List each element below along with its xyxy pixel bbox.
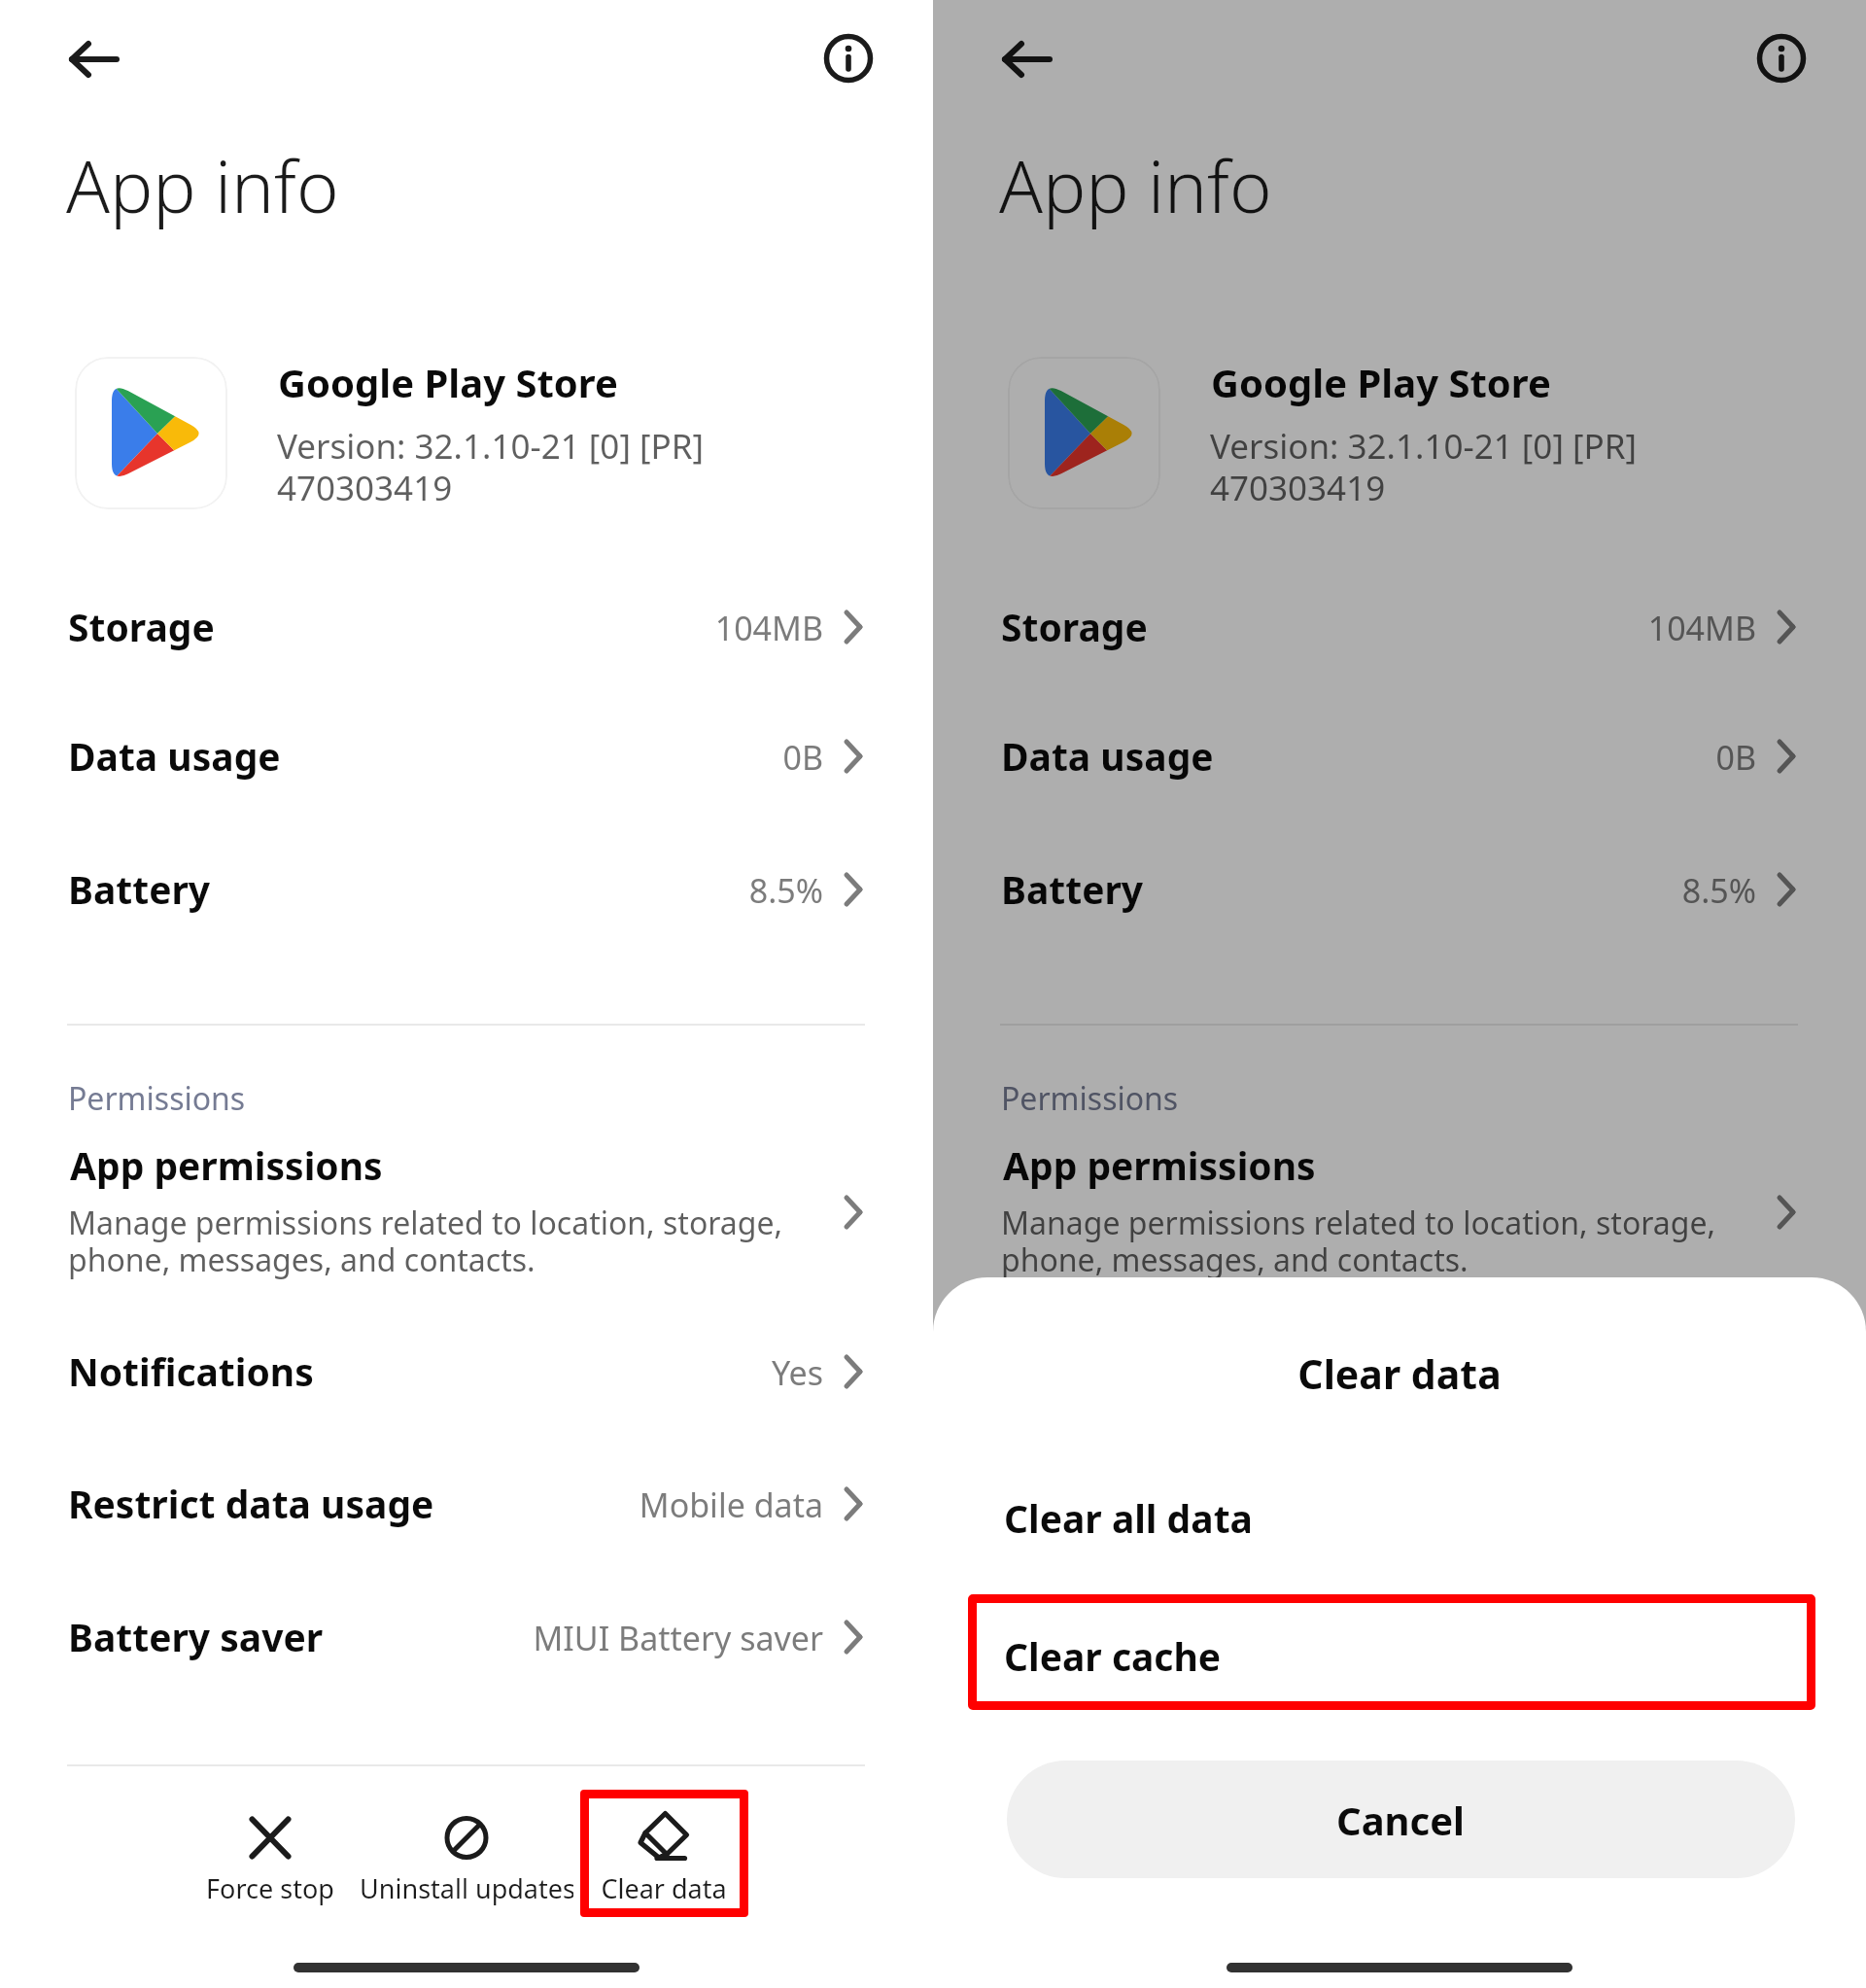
staticText: Restrict data usage — [68, 1478, 434, 1529]
button[interactable]: Force stop — [163, 1803, 377, 1910]
staticText: 470303419 — [277, 465, 453, 511]
staticText: Permissions — [1001, 1077, 1179, 1120]
staticText: Google Play Store — [278, 356, 618, 408]
button[interactable]: About app — [1750, 27, 1813, 89]
staticText: Clear cache — [1004, 1630, 1222, 1682]
button[interactable]: Data usage — [933, 705, 1866, 837]
button[interactable]: Notifications — [0, 1320, 933, 1452]
button[interactable]: Force stop — [1096, 1803, 1310, 1910]
staticText: Google Play Store — [1211, 356, 1551, 408]
staticText: Clear data — [557, 1870, 771, 1906]
staticText: Clear data — [1490, 1870, 1704, 1906]
button[interactable]: Uninstall updates — [360, 1803, 573, 1910]
staticText: Manage permissions related to location, … — [68, 1202, 783, 1244]
staticText: Yes — [1270, 1350, 1756, 1395]
button[interactable]: App permissions — [933, 1128, 1866, 1293]
staticText: Yes — [337, 1350, 823, 1395]
staticText: Restrict data usage — [1001, 1478, 1367, 1529]
staticText: phone, messages, and contacts. — [68, 1238, 536, 1281]
staticText: Permissions — [68, 1077, 246, 1120]
staticText: Data usage — [68, 730, 281, 782]
staticText: 104MB — [1270, 606, 1756, 650]
staticText: 0B — [1270, 735, 1756, 780]
staticText: Data usage — [1001, 730, 1214, 782]
staticText: Force stop — [163, 1870, 377, 1906]
staticText: Uninstall updates — [1293, 1870, 1506, 1906]
staticText: Notifications — [68, 1345, 314, 1397]
button[interactable]: App permissions — [0, 1128, 933, 1293]
staticText: 104MB — [337, 606, 823, 650]
button[interactable]: Storage — [0, 575, 933, 708]
staticText: MIUI Battery saver — [337, 1616, 823, 1660]
staticText: App permissions — [70, 1139, 383, 1191]
staticText: Mobile data — [337, 1482, 823, 1527]
staticText: Version: 32.1.10-21 [0] [PR] — [277, 423, 704, 470]
staticText: 8.5% — [337, 868, 823, 913]
staticText: Storage — [1001, 601, 1148, 652]
staticText: Clear data — [1108, 1346, 1691, 1401]
button[interactable]: Battery — [0, 838, 933, 970]
button[interactable]: Cancel — [1007, 1761, 1795, 1878]
staticText: App permissions — [1003, 1139, 1316, 1191]
staticText: Battery saver — [68, 1611, 324, 1662]
staticText: phone, messages, and contacts. — [1001, 1238, 1469, 1281]
staticText: Clear all data — [1004, 1492, 1253, 1544]
button[interactable]: Back — [987, 25, 1065, 93]
button[interactable]: Clear data — [557, 1803, 771, 1910]
button[interactable]: Notifications — [933, 1320, 1866, 1452]
staticText: Battery — [1001, 863, 1144, 915]
staticText: Force stop — [1096, 1870, 1310, 1906]
button[interactable]: Restrict data usage — [0, 1452, 933, 1585]
button[interactable]: Data usage — [0, 705, 933, 837]
button[interactable]: Battery — [933, 838, 1866, 970]
button[interactable]: Uninstall updates — [1293, 1803, 1506, 1910]
staticText: Version: 32.1.10-21 [0] [PR] — [1210, 423, 1637, 470]
button[interactable]: Storage — [933, 575, 1866, 708]
button[interactable]: Back — [54, 25, 132, 93]
button[interactable]: Battery saver — [933, 1586, 1866, 1718]
button[interactable]: Clear data — [1490, 1803, 1704, 1910]
staticText: 8.5% — [1270, 868, 1756, 913]
staticText: Battery — [68, 863, 211, 915]
staticText: 470303419 — [1210, 465, 1386, 511]
button[interactable]: Clear all data — [933, 1478, 1866, 1585]
staticText: Uninstall updates — [360, 1870, 573, 1906]
button[interactable]: Restrict data usage — [933, 1452, 1866, 1585]
staticText: Battery saver — [1001, 1611, 1257, 1662]
button[interactable]: Battery saver — [0, 1586, 933, 1718]
staticText: App info — [999, 136, 1272, 234]
staticText: Manage permissions related to location, … — [1001, 1202, 1716, 1244]
staticText: Cancel — [1109, 1794, 1692, 1846]
button[interactable]: Clear cache — [968, 1594, 1815, 1710]
staticText: Storage — [68, 601, 215, 652]
staticText: 0B — [337, 735, 823, 780]
button[interactable]: About app — [817, 27, 880, 89]
staticText: App info — [66, 136, 339, 234]
